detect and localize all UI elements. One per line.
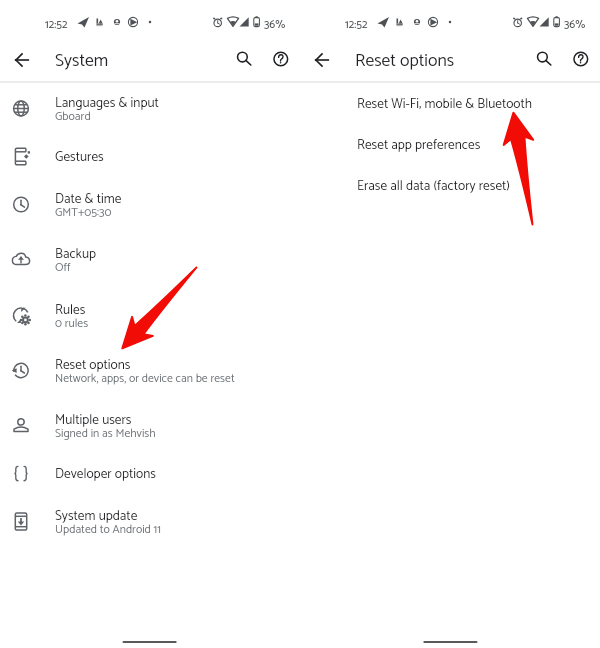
- staticText: GMT+05:30: [55, 203, 112, 222]
- staticText: Gboard: [55, 107, 91, 126]
- staticText: Network, apps, or device can be reset: [55, 369, 235, 388]
- staticText: Developer options: [55, 463, 156, 485]
- button[interactable]: Reset Wi-Fi, mobile & Bluetooth: [300, 81, 600, 122]
- button[interactable]: Reset options: [0, 343, 300, 398]
- staticText: Erase all data (factory reset): [357, 175, 510, 197]
- staticText: Signed in as Mehvish: [55, 424, 156, 443]
- button[interactable]: Help: [266, 46, 296, 76]
- button[interactable]: Rules: [0, 288, 300, 343]
- button[interactable]: Languages & input: [0, 81, 300, 136]
- staticText: 36%: [564, 15, 586, 34]
- staticText: Rules: [55, 299, 86, 321]
- staticText: Date & time: [55, 188, 122, 210]
- staticText: Backup: [55, 243, 96, 265]
- button[interactable]: Search: [528, 46, 558, 76]
- staticText: 0 rules: [55, 314, 89, 333]
- button[interactable]: Gestures: [0, 136, 300, 177]
- staticText: System update: [55, 505, 138, 527]
- button[interactable]: Backup: [0, 232, 300, 287]
- staticText: Reset app preferences: [357, 134, 481, 156]
- button[interactable]: System update: [0, 494, 300, 549]
- staticText: Reset options: [355, 47, 455, 76]
- staticText: Off: [55, 258, 71, 277]
- staticText: System: [55, 47, 109, 76]
- staticText: 36%: [264, 15, 286, 34]
- button[interactable]: Erase all data (factory reset): [300, 163, 600, 204]
- button[interactable]: Search: [228, 46, 258, 76]
- staticText: Reset Wi-Fi, mobile & Bluetooth: [357, 93, 533, 115]
- button[interactable]: Reset app preferences: [300, 122, 600, 163]
- staticText: Languages & input: [55, 92, 159, 114]
- staticText: Gestures: [55, 146, 104, 168]
- button[interactable]: Multiple users: [0, 398, 300, 453]
- staticText: 12:52: [45, 15, 68, 34]
- staticText: Updated to Android 11: [55, 520, 161, 539]
- button[interactable]: Help: [566, 46, 596, 76]
- staticText: Multiple users: [55, 409, 132, 431]
- button[interactable]: Developer options: [0, 453, 300, 494]
- staticText: 12:52: [345, 15, 368, 34]
- button[interactable]: Back: [6, 44, 38, 76]
- staticText: Reset options: [55, 354, 131, 376]
- button[interactable]: Back: [306, 44, 338, 76]
- button[interactable]: Date & time: [0, 177, 300, 232]
